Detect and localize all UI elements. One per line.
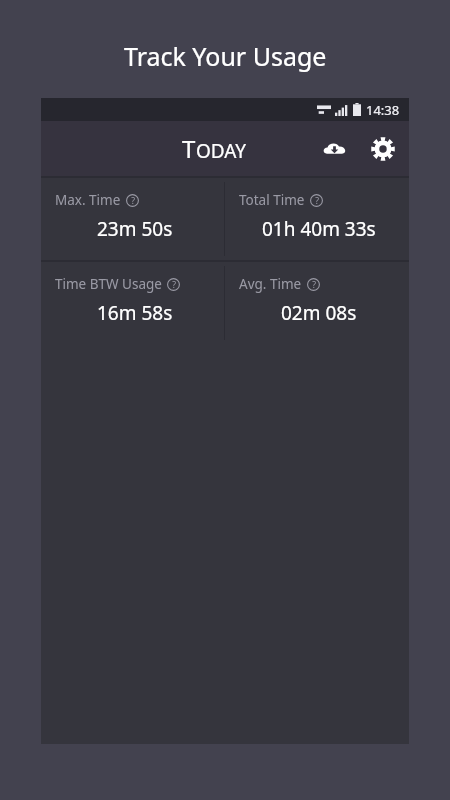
staticText: ? (172, 279, 176, 291)
button[interactable]: Max. Time (41, 178, 224, 260)
staticText: Avg. Time (239, 275, 302, 293)
staticText: ? (315, 195, 319, 207)
button[interactable]: Total Time (225, 178, 409, 260)
button[interactable]: Download (316, 131, 352, 167)
staticText: Total Time (239, 191, 305, 209)
button[interactable]: Help (310, 194, 323, 207)
staticText: 01h 40m 33s (262, 216, 376, 242)
staticText: ? (312, 279, 316, 291)
staticText: ODAY (196, 138, 247, 164)
staticText: Track Your Usage (124, 39, 327, 73)
button[interactable]: Help (307, 278, 320, 291)
staticText: ? (131, 195, 135, 207)
button[interactable]: Help (126, 194, 139, 207)
staticText: 14:38 (366, 101, 400, 119)
button[interactable]: Settings (365, 131, 401, 167)
button[interactable]: Help (167, 278, 180, 291)
staticText: 23m 50s (97, 216, 173, 242)
staticText: 02m 08s (281, 300, 357, 326)
staticText: 16m 58s (97, 300, 173, 326)
staticText: T (182, 132, 196, 165)
button[interactable]: Avg. Time (225, 262, 409, 344)
staticText: Time BTW Usage (55, 275, 162, 293)
button[interactable]: Time BTW Usage (41, 262, 224, 344)
staticText: Max. Time (55, 191, 121, 209)
